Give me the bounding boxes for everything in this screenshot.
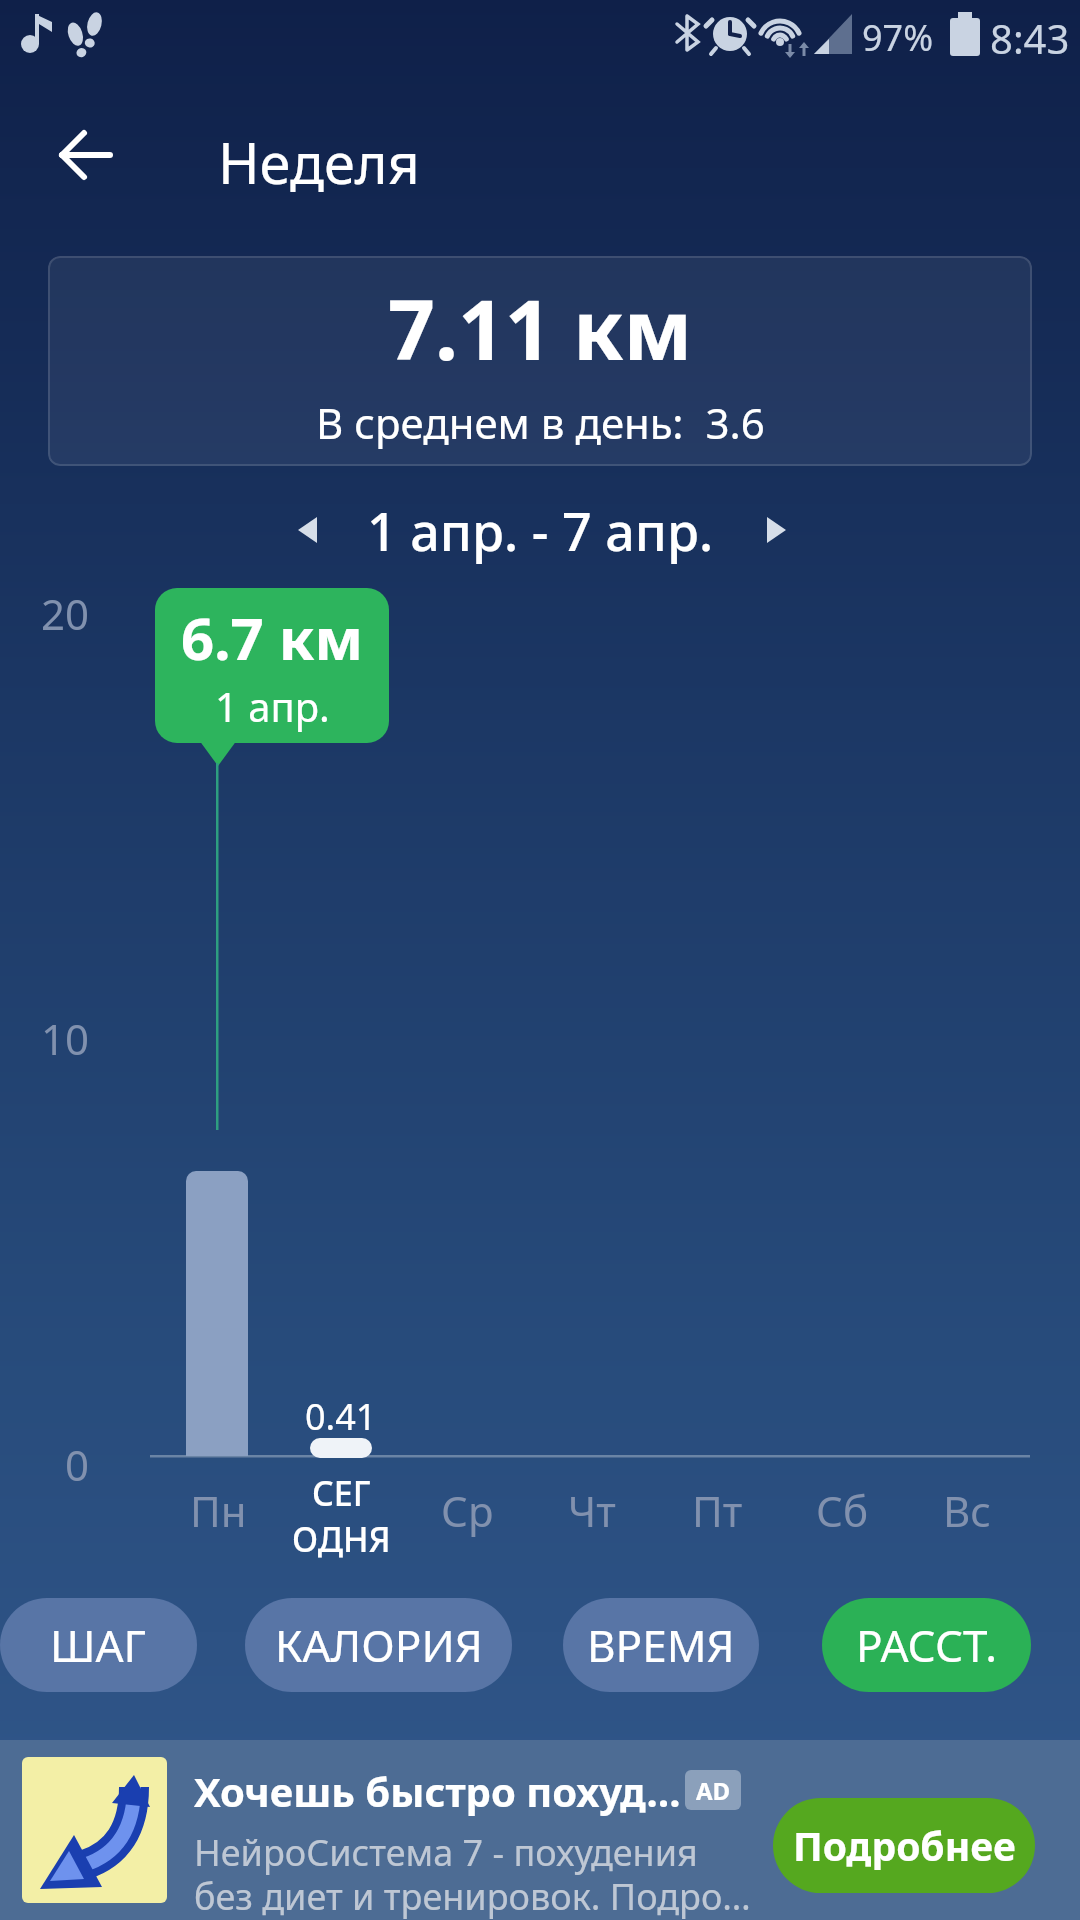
staticText: 97% [862,13,934,62]
button[interactable] [40,125,160,195]
button[interactable]: 1 апр. - 7 апр. [280,495,800,565]
staticText: 0 [65,1436,90,1493]
staticText: 20 [41,585,90,642]
staticText: КАЛОРИЯ [275,1615,483,1675]
staticText: Сб [816,1482,868,1539]
staticText: Неделя [218,124,420,200]
staticText: Подробнее [793,1819,1016,1872]
staticText: без диет и тренировок. Подро… [194,1872,751,1920]
staticText: Пн [190,1482,247,1539]
staticText: AD [696,1774,731,1807]
staticText: НейроСистема 7 - похудения [194,1828,698,1877]
staticText: 1 апр. - 7 апр. [367,495,714,565]
staticText: 1 апр. [215,679,330,733]
staticText: ОДНЯ [292,1516,391,1562]
button[interactable]: Подробнее [773,1798,1035,1893]
button[interactable]: 6.7 км [155,588,389,743]
staticText: ШАГ [50,1615,147,1675]
staticText: СЕГ [312,1470,371,1516]
staticText: Вс [943,1482,992,1539]
staticText: Чт [568,1482,616,1539]
staticText: 0.41 [305,1392,377,1441]
button[interactable]: 7.11 км [48,256,1032,466]
staticText: ВРЕМЯ [587,1615,735,1675]
button[interactable]: РАССТ. [822,1598,1031,1692]
staticText: 10 [41,1010,90,1067]
button[interactable]: КАЛОРИЯ [245,1598,512,1692]
staticText: 8:43 [990,11,1070,65]
button[interactable]: ВРЕМЯ [563,1598,759,1692]
staticText: РАССТ. [856,1615,998,1675]
staticText: 6.7 км [181,598,364,677]
staticText: В среднем в день: 3.6 [316,394,765,451]
button[interactable]: ШАГ [0,1598,197,1692]
staticText: Пт [692,1482,743,1539]
staticText: Хочешь быстро похуд… [194,1764,681,1818]
staticText: Ср [441,1482,494,1539]
button[interactable]: Хочешь быстро похуд… [0,1740,1080,1920]
staticText: 7.11 км [388,272,693,384]
